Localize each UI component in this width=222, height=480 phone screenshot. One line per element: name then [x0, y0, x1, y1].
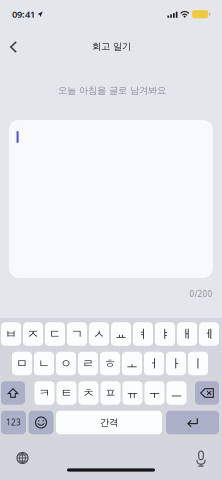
button[interactable]: ㅣ [188, 352, 208, 375]
staticText: ㅎ [104, 356, 116, 371]
staticText: ㅜ [148, 386, 160, 400]
button[interactable]: ㄴ [34, 352, 54, 375]
staticText: ㅍ [104, 386, 116, 400]
staticText: 0/200 [189, 289, 212, 299]
staticText: ㅔ [203, 327, 215, 341]
staticText: ㅐ [181, 327, 193, 341]
staticText: 오늘 아침을 글로 남겨봐요 [58, 85, 166, 96]
button[interactable]: ㅐ [177, 322, 197, 346]
staticText: 123 [6, 417, 21, 428]
button[interactable]: 간격 [56, 411, 162, 434]
button[interactable]: ㄱ [67, 322, 87, 346]
staticText: ㅑ [159, 327, 171, 341]
button[interactable]: ㅊ [78, 381, 98, 405]
staticText: ㅣ [192, 356, 204, 371]
staticText: ㅕ [137, 327, 149, 341]
staticText: ㅁ [16, 356, 28, 371]
staticText: 간격 [100, 417, 118, 428]
staticText: ㅊ [82, 386, 94, 400]
button[interactable]: Return [166, 411, 219, 434]
button[interactable]: ㅈ [23, 322, 43, 346]
button[interactable]: Next keyboard [10, 447, 34, 469]
button[interactable]: ㅁ [12, 352, 32, 375]
staticText: ㅗ [126, 356, 138, 371]
staticText: ㅋ [38, 386, 50, 400]
staticText: ㅅ [93, 327, 105, 341]
button[interactable]: ㅏ [166, 352, 186, 375]
staticText: ㅡ [170, 386, 182, 400]
button[interactable]: ㅔ [199, 322, 219, 346]
staticText: 09:41 [12, 8, 35, 20]
staticText: ㄴ [38, 356, 50, 371]
staticText: ㅌ [60, 386, 72, 400]
button[interactable]: ㅌ [56, 381, 76, 405]
staticText: ㄱ [71, 327, 83, 341]
button[interactable]: ㅋ [34, 381, 54, 405]
button[interactable]: ㅅ [89, 322, 109, 346]
button[interactable]: ㅕ [133, 322, 153, 346]
button[interactable]: ㄹ [78, 352, 98, 375]
button[interactable]: Back [1, 35, 25, 59]
button[interactable]: 123 [1, 411, 26, 434]
staticText: 회고 일기 [92, 41, 131, 52]
button[interactable]: ㅠ [122, 381, 142, 405]
button[interactable]: ㅜ [144, 381, 164, 405]
button[interactable]: ㅓ [144, 352, 164, 375]
button[interactable]: ㅍ [100, 381, 120, 405]
button[interactable]: ㅂ [1, 322, 21, 346]
button[interactable]: ㅑ [155, 322, 175, 346]
staticText: ㅠ [126, 386, 138, 400]
button[interactable]: ㅛ [111, 322, 131, 346]
button[interactable]: Delete [195, 381, 219, 405]
button[interactable]: Emoji [28, 411, 53, 434]
staticText: ㅇ [60, 356, 72, 371]
button[interactable]: ㅎ [100, 352, 120, 375]
staticText: ㅓ [148, 356, 160, 371]
button[interactable]: ㄷ [45, 322, 65, 346]
staticText: ㅛ [115, 327, 127, 341]
button[interactable]: ㅡ [166, 381, 186, 405]
button[interactable]: Shift [1, 381, 25, 405]
button[interactable]: ㅇ [56, 352, 76, 375]
button[interactable]: ㅗ [122, 352, 142, 375]
button[interactable]: Dictation [189, 447, 213, 469]
staticText: ㅈ [27, 327, 39, 341]
staticText: ㅂ [5, 327, 17, 341]
staticText: ㅏ [170, 356, 182, 371]
staticText: ㄹ [82, 356, 94, 371]
staticText: ㄷ [49, 327, 61, 341]
